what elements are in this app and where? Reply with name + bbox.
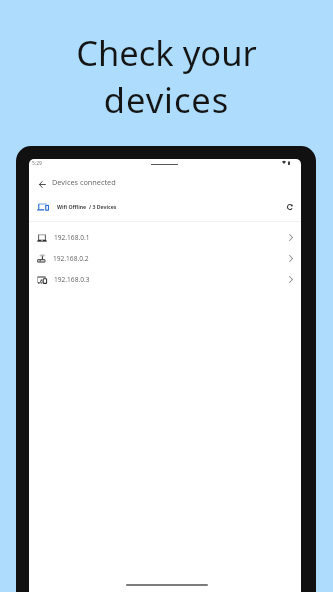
button[interactable]: Refresh — [284, 201, 296, 213]
staticText: 192.168.0.2 — [53, 254, 89, 263]
button[interactable]: Back — [33, 175, 51, 193]
staticText: 5:29 — [32, 160, 42, 167]
staticText: devices — [0, 76, 333, 123]
button[interactable]: 192.168.0.2 — [29, 248, 301, 269]
staticText: 192.168.0.3 — [54, 275, 90, 284]
button[interactable]: 192.168.0.3 — [29, 269, 301, 290]
button[interactable]: 192.168.0.1 — [29, 227, 301, 248]
staticText: Devices connected — [52, 177, 116, 187]
staticText: Check your — [0, 29, 333, 76]
staticText: 192.168.0.1 — [54, 233, 90, 242]
staticText: Wifi Offline / 3 Devices — [57, 203, 117, 210]
button[interactable]: Wifi Offline / 3 Devices — [29, 196, 301, 217]
